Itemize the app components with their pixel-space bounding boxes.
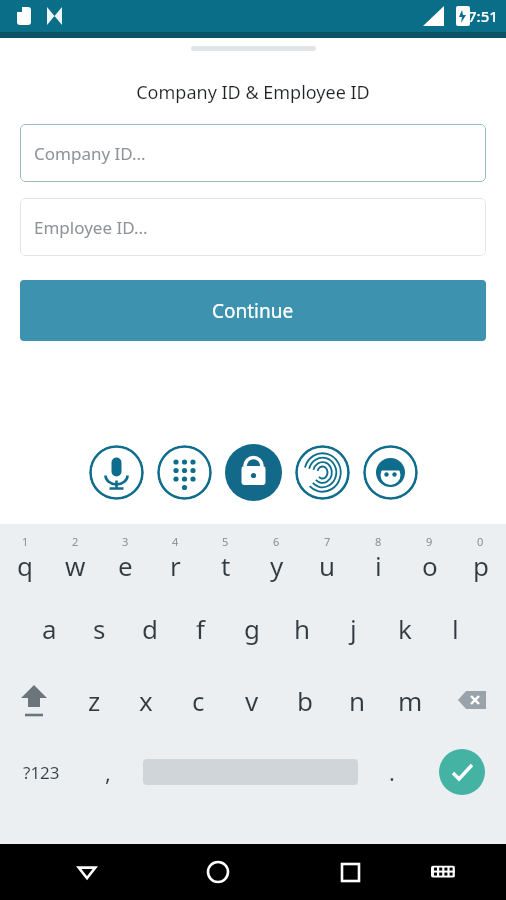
staticText: 8 <box>375 534 382 549</box>
button[interactable]: j <box>328 592 379 664</box>
staticText: r <box>170 548 181 583</box>
button[interactable]: 4 <box>150 530 200 592</box>
staticText: s <box>93 611 106 646</box>
button[interactable]: Company ID... <box>20 124 486 182</box>
button[interactable]: 8 <box>353 530 404 592</box>
button[interactable]: Back <box>48 844 125 900</box>
staticText: 7 <box>324 534 331 549</box>
staticText: q <box>17 548 33 583</box>
staticText: Continue <box>212 298 294 324</box>
button[interactable]: v <box>225 664 278 736</box>
staticText: k <box>398 611 412 646</box>
button[interactable]: Voice <box>89 445 144 500</box>
button[interactable]: Switch keyboard <box>404 844 482 900</box>
staticText: m <box>398 683 423 718</box>
staticText: 0 <box>477 534 484 549</box>
button[interactable]: Enter <box>417 736 506 808</box>
staticText: h <box>294 611 311 646</box>
button[interactable]: z <box>68 664 120 736</box>
staticText: 1 <box>22 534 29 549</box>
staticText: ?123 <box>23 761 60 784</box>
staticText: n <box>349 683 366 718</box>
button[interactable]: 7 <box>302 530 353 592</box>
staticText: 6 <box>273 534 280 549</box>
button[interactable]: 2 <box>50 530 100 592</box>
staticText: b <box>297 683 313 718</box>
button[interactable]: 3 <box>100 530 150 592</box>
staticText: d <box>142 611 158 646</box>
button[interactable]: Home <box>179 844 257 900</box>
button[interactable]: Lock <box>225 444 282 501</box>
button[interactable]: Recents <box>311 844 389 900</box>
button[interactable]: Space <box>133 736 367 808</box>
button[interactable]: x <box>120 664 172 736</box>
staticText: o <box>422 548 438 583</box>
staticText: 5 <box>222 534 229 549</box>
button[interactable]: 6 <box>251 530 302 592</box>
staticText: g <box>244 611 260 646</box>
button[interactable]: Backspace <box>437 664 506 736</box>
staticText: t <box>221 548 231 583</box>
button[interactable]: a <box>24 592 74 664</box>
staticText: 9 <box>426 534 433 549</box>
staticText: e <box>118 548 133 583</box>
button[interactable]: Fingerprint <box>295 445 350 500</box>
staticText: Company ID & Employee ID <box>0 80 506 105</box>
staticText: , <box>105 757 111 787</box>
button[interactable]: , <box>83 736 133 808</box>
staticText: c <box>192 683 205 718</box>
button[interactable]: m <box>384 664 437 736</box>
staticText: Company ID... <box>34 142 146 165</box>
button[interactable]: c <box>172 664 225 736</box>
button[interactable]: b <box>278 664 331 736</box>
staticText: f <box>196 611 205 646</box>
staticText: 2 <box>72 534 79 549</box>
button[interactable]: d <box>124 592 175 664</box>
staticText: u <box>319 548 336 583</box>
button[interactable]: Dialpad <box>157 445 212 500</box>
button[interactable]: 1 <box>0 530 50 592</box>
staticText: j <box>350 611 357 646</box>
button[interactable]: Face <box>363 445 418 500</box>
button[interactable]: ?123 <box>0 736 83 808</box>
staticText: x <box>139 683 153 718</box>
button[interactable]: 0 <box>455 530 506 592</box>
staticText: Employee ID... <box>34 216 148 239</box>
staticText: i <box>375 548 382 583</box>
staticText: 3 <box>122 534 129 549</box>
button[interactable]: . <box>367 736 417 808</box>
button[interactable]: n <box>331 664 384 736</box>
button[interactable]: g <box>226 592 277 664</box>
staticText: z <box>88 683 101 718</box>
button[interactable]: k <box>379 592 430 664</box>
button[interactable]: h <box>277 592 328 664</box>
staticText: v <box>245 683 259 718</box>
button[interactable]: 5 <box>200 530 251 592</box>
button[interactable]: l <box>430 592 481 664</box>
button[interactable]: Employee ID... <box>20 198 486 256</box>
staticText: y <box>270 548 284 583</box>
staticText: 4 <box>172 534 179 549</box>
staticText: a <box>42 611 57 646</box>
staticText: p <box>473 548 489 583</box>
button[interactable]: 9 <box>404 530 455 592</box>
button[interactable]: Continue <box>20 280 486 341</box>
staticText: . <box>389 757 395 787</box>
button[interactable]: s <box>74 592 124 664</box>
button[interactable]: Shift <box>0 664 68 736</box>
staticText: 7:51 <box>468 6 498 26</box>
staticText: l <box>452 611 459 646</box>
staticText: w <box>65 548 86 583</box>
button[interactable]: f <box>175 592 226 664</box>
